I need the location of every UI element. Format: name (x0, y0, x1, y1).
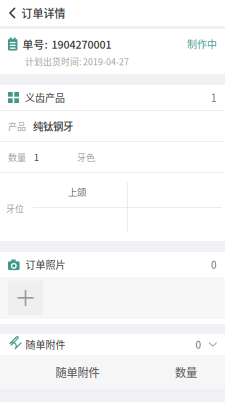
staticText: 0 (196, 337, 202, 352)
button[interactable]: Add photo (8, 280, 43, 315)
staticText: 订单详情 (21, 5, 65, 21)
staticText: 1 (34, 150, 39, 163)
staticText: 随单附件 (55, 364, 99, 380)
staticText: 纯钛钢牙 (33, 118, 73, 134)
button[interactable]: 订单详情 (0, 0, 73, 26)
staticText: 牙色 (77, 150, 95, 163)
staticText: 单号: 1904270001 (22, 36, 111, 52)
staticText: 订单照片 (26, 257, 66, 272)
staticText: 数量 (175, 364, 197, 380)
button[interactable]: 随单附件 (0, 334, 225, 355)
staticText: 上颌 (68, 185, 86, 198)
staticText: 数量 (8, 150, 26, 163)
staticText: 牙位 (6, 202, 24, 215)
staticText: 1 (211, 90, 217, 105)
staticText: 产品 (8, 119, 26, 132)
staticText: 计划出货时间: 2019-04-27 (25, 55, 129, 68)
staticText: 随单附件 (26, 337, 66, 352)
staticText: 制作中 (187, 37, 217, 51)
staticText: 义齿产品 (25, 90, 65, 105)
staticText: 0 (211, 257, 217, 272)
